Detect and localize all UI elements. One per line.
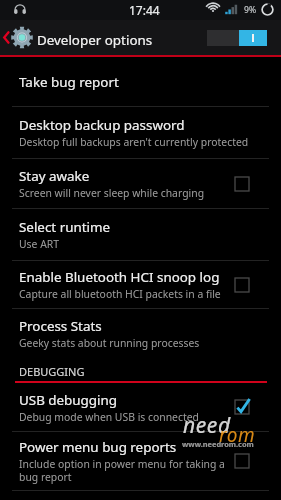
button[interactable]: Process Stats <box>0 309 281 358</box>
staticText: Use ART <box>19 237 60 251</box>
staticText: 17:44 <box>129 2 160 18</box>
button[interactable]: Select runtime <box>0 209 281 260</box>
staticText: 9% <box>244 4 257 16</box>
staticText: Screen will never sleep while charging <box>19 186 205 200</box>
staticText: Geeky stats about running processes <box>19 336 200 350</box>
staticText: Debug mode when USB is connected <box>19 410 199 424</box>
staticText: Developer options <box>37 31 153 49</box>
staticText: Enable Bluetooth HCI snoop log <box>19 268 220 286</box>
staticText: USB debugging <box>19 391 118 409</box>
staticText: www.needrom.com <box>182 439 254 449</box>
staticText: Take bug report <box>19 73 119 91</box>
staticText: Desktop full backups aren't currently pr… <box>19 135 249 149</box>
staticText: Process Stats <box>19 317 102 335</box>
button[interactable]: Stay awake <box>0 159 281 208</box>
button[interactable]: Enable Bluetooth HCI snoop log <box>0 261 281 308</box>
button[interactable]: Power menu bug reports <box>0 432 281 490</box>
staticText: Capture all bluetooth HCI packets in a f… <box>19 287 221 301</box>
staticText: DEBUGGING <box>19 364 85 379</box>
button[interactable]: Take bug report <box>0 57 281 106</box>
button[interactable]: Navigate up, Developer options <box>0 20 36 55</box>
staticText: Select runtime <box>19 218 111 236</box>
staticText: rom <box>219 422 256 448</box>
staticText: Stay awake <box>19 167 90 185</box>
button[interactable]: USB debugging <box>0 383 281 431</box>
staticText: Include option in power menu for taking … <box>19 457 225 484</box>
staticText: Power menu bug reports <box>19 438 177 456</box>
button[interactable]: Toggle developer options <box>207 30 267 46</box>
staticText: Desktop backup password <box>19 116 185 134</box>
staticText: need <box>183 411 231 440</box>
button[interactable]: Desktop backup password <box>0 107 281 158</box>
